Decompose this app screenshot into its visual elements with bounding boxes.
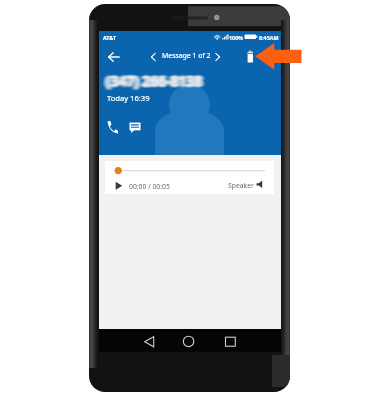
staticText: (347) 266-8138 [110,71,206,89]
staticText: (347) 266-8138 [109,73,205,91]
staticText: (347) 266-8138 [109,71,205,89]
staticText: (347) 266-8138 [109,70,205,88]
staticText: (347) 266-8138 [103,74,199,92]
button[interactable]: Previous message [147,51,159,63]
staticText: (347) 266-8138 [111,73,207,91]
staticText: (347) 266-8138 [105,73,201,91]
staticText: (347) 266-8138 [105,74,201,92]
staticText: (347) 266-8138 [102,73,198,91]
staticText: (347) 266-8138 [104,71,200,89]
staticText: (347) 266-8138 [102,74,198,92]
staticText: (347) 266-8138 [110,71,206,89]
staticText: (347) 266-8138 [103,70,199,88]
staticText: (347) 266-8138 [105,73,201,91]
staticText: (347) 266-8138 [104,70,200,88]
staticText: (347) 266-8138 [103,71,199,89]
staticText: (347) 266-8138 [105,70,201,88]
staticText: (347) 266-8138 [107,72,203,90]
staticText: (347) 266-8138 [102,70,198,88]
staticText: (347) 266-8138 [103,74,199,92]
staticText: (347) 266-8138 [106,74,202,92]
staticText: (347) 266-8138 [111,74,207,92]
staticText: (347) 266-8138 [104,73,200,91]
staticText: (347) 266-8138 [103,72,199,90]
staticText: (347) 266-8138 [106,73,202,91]
staticText: (347) 266-8138 [108,73,204,91]
staticText: (347) 266-8138 [111,72,207,90]
button[interactable]: Delete [244,50,258,64]
staticText: (347) 266-8138 [106,74,202,92]
button[interactable]: Home [181,334,197,350]
staticText: (347) 266-8138 [111,73,207,91]
staticText: (347) 266-8138 [108,74,204,92]
staticText: (347) 266-8138 [109,73,205,91]
staticText: (347) 266-8138 [103,70,199,88]
staticText: (347) 266-8138 [107,74,203,92]
staticText: (347) 266-8138 [108,72,204,90]
staticText: (347) 266-8138 [108,72,204,90]
staticText: (347) 266-8138 [106,70,202,88]
staticText: (347) 266-8138 [107,71,203,89]
staticText: (347) 266-8138 [101,72,197,90]
staticText: (347) 266-8138 [107,73,203,91]
staticText: (347) 266-8138 [102,73,198,91]
staticText: (347) 266-8138 [107,72,203,90]
staticText: (347) 266-8138 [102,71,198,89]
button[interactable]: Message [129,121,141,134]
staticText: (347) 266-8138 [102,74,198,92]
staticText: (347) 266-8138 [110,73,206,91]
staticText: (347) 266-8138 [103,71,199,89]
staticText: (347) 266-8138 [101,74,197,92]
button[interactable]: Back [106,48,124,66]
staticText: (347) 266-8138 [102,72,198,90]
staticText: (347) 266-8138 [109,72,205,90]
staticText: (347) 266-8138 [106,71,202,89]
staticText: (347) 266-8138 [107,72,203,90]
button[interactable]: 00:00 / 00:05 [105,161,274,194]
staticText: (347) 266-8138 [107,74,203,92]
staticText: (347) 266-8138 [106,71,202,89]
staticText: (347) 266-8138 [104,74,200,92]
staticText: (347) 266-8138 [106,72,202,90]
button[interactable]: Back [141,334,157,350]
staticText: (347) 266-8138 [108,73,204,91]
staticText: (347) 266-8138 [111,74,207,92]
staticText: (347) 266-8138 [102,72,198,90]
staticText: (347) 266-8138 [106,73,202,91]
staticText: (347) 266-8138 [111,70,207,88]
staticText: (347) 266-8138 [109,74,205,92]
staticText: (347) 266-8138 [101,70,197,88]
staticText: (347) 266-8138 [106,74,202,92]
staticText: (347) 266-8138 [104,73,200,91]
staticText: (347) 266-8138 [109,73,205,91]
staticText: (347) 266-8138 [103,72,199,90]
staticText: (347) 266-8138 [108,72,204,90]
staticText: 8:45AM [259,34,279,41]
staticText: (347) 266-8138 [102,74,198,92]
staticText: (347) 266-8138 [111,74,207,92]
button[interactable]: Next message [212,51,224,63]
button[interactable]: Recents [220,334,236,350]
staticText: 100% [229,34,244,41]
staticText: (347) 266-8138 [105,71,201,89]
staticText: (347) 266-8138 [107,74,203,92]
staticText: (347) 266-8138 [108,70,204,88]
staticText: (347) 266-8138 [103,73,199,91]
staticText: (347) 266-8138 [111,71,207,89]
staticText: (347) 266-8138 [109,71,205,89]
staticText: (347) 266-8138 [106,72,202,90]
staticText: (347) 266-8138 [103,73,199,91]
staticText: (347) 266-8138 [108,74,204,92]
staticText: (347) 266-8138 [102,70,198,88]
staticText: (347) 266-8138 [110,72,206,90]
staticText: (347) 266-8138 [101,74,197,92]
staticText: (347) 266-8138 [101,71,197,89]
staticText: (347) 266-8138 [105,71,201,89]
staticText: (347) 266-8138 [106,73,202,91]
staticText: (347) 266-8138 [110,74,206,92]
staticText: (347) 266-8138 [106,74,202,92]
button[interactable]: Call [106,120,118,134]
staticText: (347) 266-8138 [109,73,205,91]
staticText: (347) 266-8138 [109,72,205,90]
staticText: (347) 266-8138 [106,72,202,90]
